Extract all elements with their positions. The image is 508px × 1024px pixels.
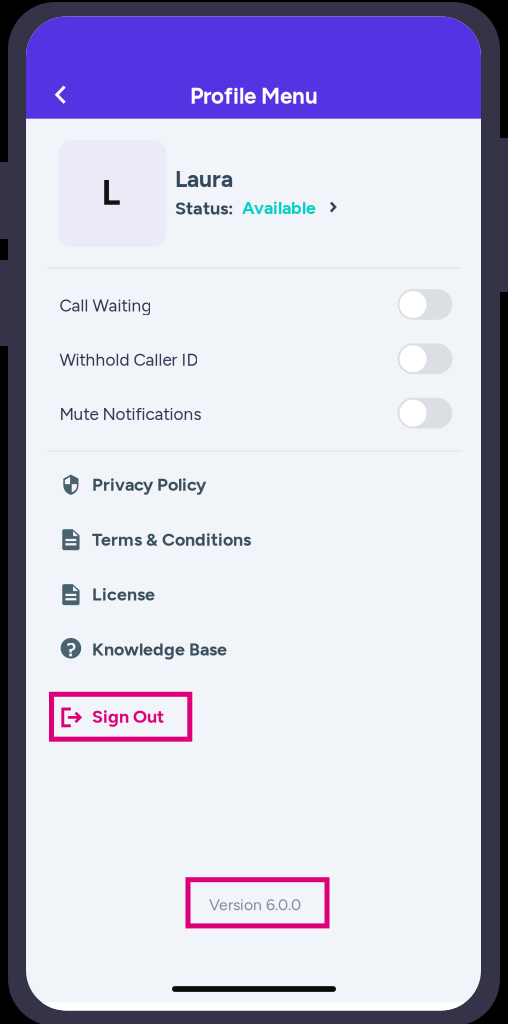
button[interactable]: Terms & Conditions	[26, 16, 326, 58]
staticText: Terms & Conditions	[92, 529, 251, 550]
staticText: Call Waiting	[59, 295, 151, 316]
staticText: Status:	[175, 197, 233, 219]
button[interactable]: Mute Notifications	[398, 398, 452, 428]
staticText: Mute Notifications	[59, 404, 201, 424]
button[interactable]: Withhold Caller ID	[398, 343, 452, 374]
button[interactable]: Back	[42, 72, 79, 117]
button[interactable]: Status:	[175, 197, 350, 219]
staticText: Available	[242, 197, 316, 218]
staticText: L	[101, 171, 120, 214]
button[interactable]: Privacy Policy	[26, 16, 326, 58]
button[interactable]: Sign Out	[49, 692, 192, 742]
staticText: Privacy Policy	[92, 474, 206, 495]
staticText: Laura	[175, 165, 233, 193]
button[interactable]: Profile photo	[58, 140, 166, 247]
button[interactable]: ?	[26, 16, 326, 58]
staticText: Withhold Caller ID	[59, 349, 198, 370]
button[interactable]: License	[26, 16, 326, 58]
button[interactable]: Call Waiting	[398, 289, 452, 320]
staticText: ?	[66, 638, 76, 661]
staticText: Sign Out	[92, 706, 164, 727]
staticText: Knowledge Base	[92, 639, 227, 660]
staticText: License	[92, 584, 155, 605]
staticText: Profile Menu	[190, 82, 318, 109]
staticText: Version 6.0.0	[209, 895, 301, 914]
